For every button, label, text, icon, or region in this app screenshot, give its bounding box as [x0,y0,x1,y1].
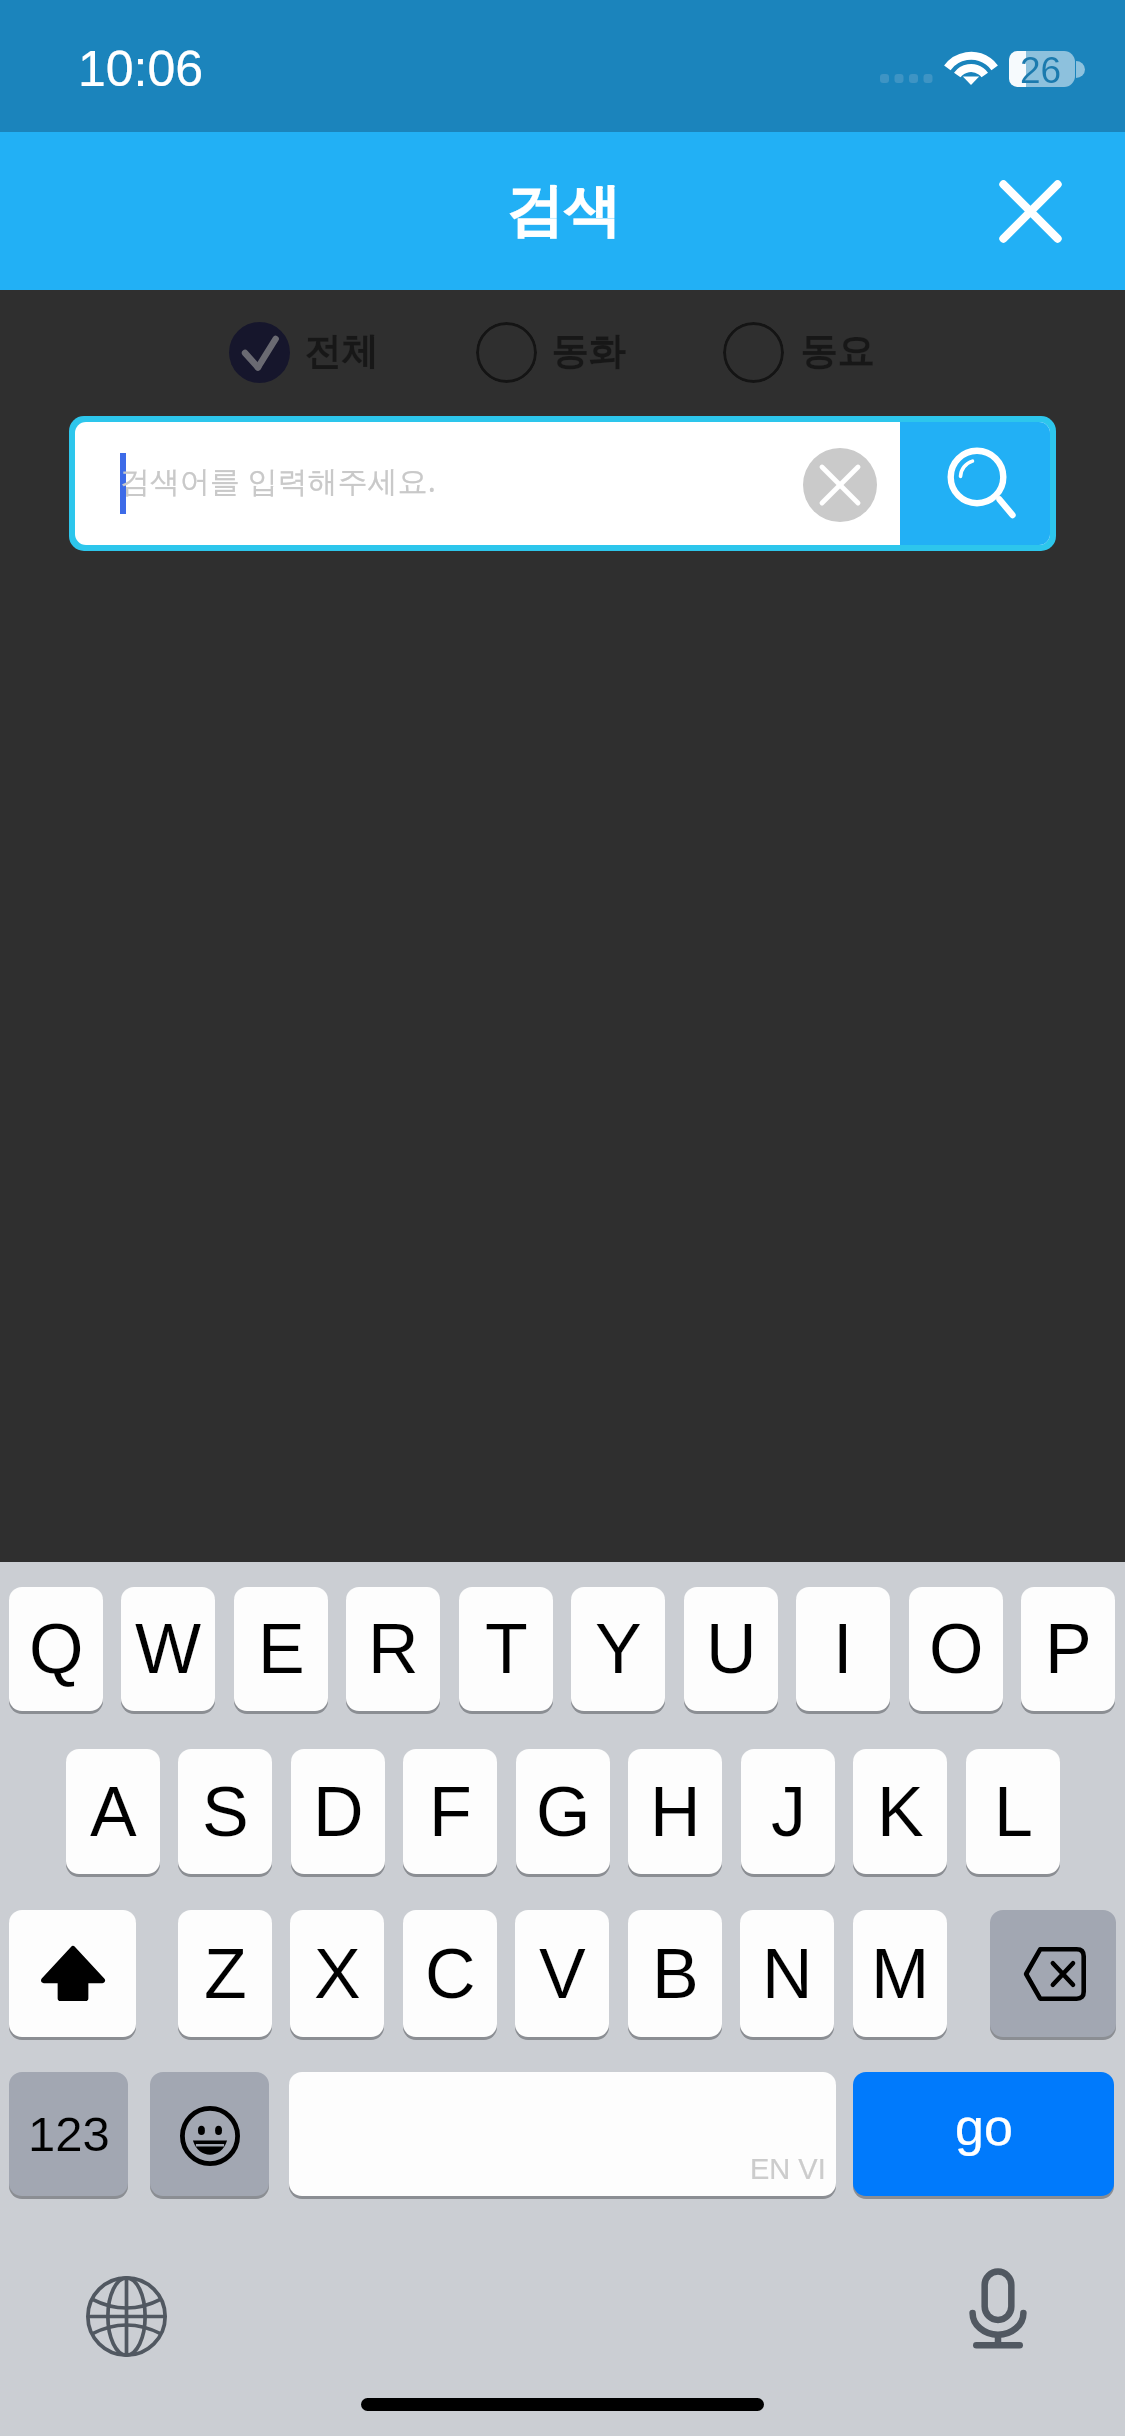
staticText: T [485,1610,528,1688]
staticText: I [833,1610,853,1688]
button[interactable]: go [853,2072,1114,2196]
button[interactable]: Z [178,1910,272,2037]
button[interactable]: Dictation [959,2270,1037,2348]
staticText: H [650,1773,701,1851]
staticText: EN VI [750,2153,826,2185]
button[interactable]: U [684,1587,778,1711]
button[interactable]: W [121,1587,215,1711]
button[interactable]: E [234,1587,328,1711]
staticText: go [955,2098,1013,2156]
staticText: L [994,1773,1033,1851]
button[interactable]: D [291,1749,385,1874]
staticText: K [877,1773,924,1851]
staticText: N [762,1935,813,2013]
button[interactable]: Q [9,1587,103,1711]
button[interactable]: Close [970,171,1090,251]
button[interactable]: Change keyboard [86,2276,167,2357]
button[interactable]: H [628,1749,722,1874]
staticText: 동화 [551,328,625,375]
staticText: O [929,1610,984,1688]
button[interactable]: F [403,1749,497,1874]
staticText: F [429,1773,472,1851]
staticText: 전체 [304,328,378,375]
button[interactable]: V [515,1910,609,2037]
button[interactable]: Search [900,422,1050,545]
staticText: P [1045,1610,1092,1688]
staticText: Y [595,1610,642,1688]
staticText: U [706,1610,757,1688]
staticText: D [313,1773,364,1851]
button[interactable]: X [290,1910,384,2037]
staticText: G [536,1773,591,1851]
button[interactable]: I [796,1587,890,1711]
button[interactable]: N [740,1910,834,2037]
staticText: 검색 [506,175,620,247]
staticText: Q [29,1610,84,1688]
button[interactable]: P [1021,1587,1115,1711]
button[interactable]: 전체 [229,312,374,394]
staticText: W [135,1610,202,1688]
staticText: E [258,1610,305,1688]
staticText: B [652,1935,699,2013]
button[interactable]: R [346,1587,440,1711]
button[interactable]: S [178,1749,272,1874]
button[interactable]: T [459,1587,553,1711]
button[interactable]: L [966,1749,1060,1874]
staticText: Z [204,1935,247,2013]
button[interactable]: O [909,1587,1003,1711]
button[interactable] [150,2072,269,2196]
button[interactable]: M [853,1910,947,2037]
button[interactable]: C [403,1910,497,2037]
staticText: S [202,1773,249,1851]
staticText: A [90,1773,137,1851]
button[interactable]: 동화 [476,312,621,394]
staticText: R [368,1610,419,1688]
button[interactable]: Clear text [803,448,877,522]
staticText: X [314,1935,361,2013]
staticText: J [771,1773,806,1851]
staticText: 검색어를 입력해주세요. [120,460,436,501]
staticText: M [871,1935,930,2013]
button[interactable]: B [628,1910,722,2037]
button[interactable]: 동요 [723,312,870,394]
button[interactable]: G [516,1749,610,1874]
button[interactable]: K [853,1749,947,1874]
staticText: 동요 [800,328,874,375]
staticText: 123 [28,2107,110,2162]
button[interactable] [990,1910,1116,2037]
staticText: 10:06 [78,41,204,97]
button[interactable]: A [66,1749,160,1874]
staticText: V [539,1935,586,2013]
button[interactable] [9,1910,136,2037]
staticText: 26 [1020,50,1062,91]
button[interactable]: J [741,1749,835,1874]
button[interactable]: EN VI [289,2072,836,2196]
staticText: C [425,1935,476,2013]
button[interactable]: 123 [9,2072,128,2196]
button[interactable]: Y [571,1587,665,1711]
